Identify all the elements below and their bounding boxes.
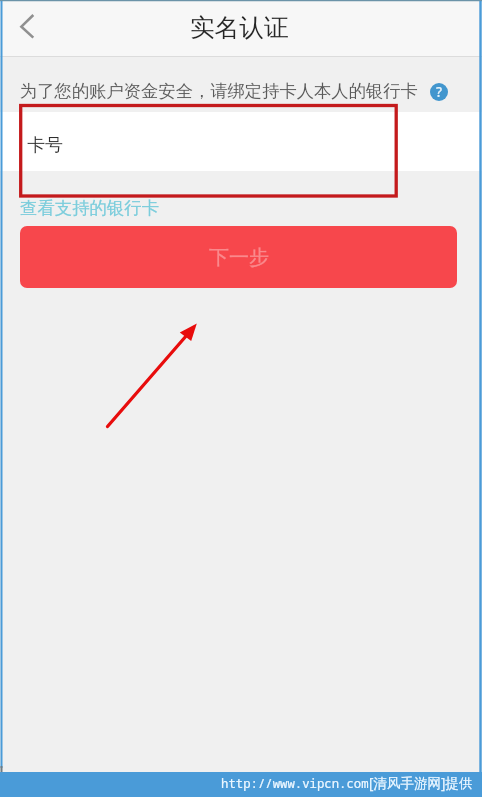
staticText: http://www.vipcn.com (221, 775, 369, 792)
staticText: 查看支持的银行卡 (20, 197, 160, 219)
button[interactable]: Help (429, 82, 448, 101)
staticText: 下一步 (209, 245, 269, 270)
staticText: 卡号 (27, 134, 63, 157)
staticText: [清风手游网]提供 (369, 774, 473, 792)
button[interactable]: 卡号 (0, 112, 482, 171)
button[interactable]: 查看支持的银行卡 (20, 197, 160, 219)
staticText: 实名认证 (190, 12, 289, 43)
staticText: ? (436, 83, 443, 101)
staticText: 为了您的账户资金安全，请绑定持卡人本人的银行卡 (20, 80, 418, 102)
button[interactable]: Back (0, 0, 56, 57)
button[interactable]: 下一步 (20, 226, 457, 288)
